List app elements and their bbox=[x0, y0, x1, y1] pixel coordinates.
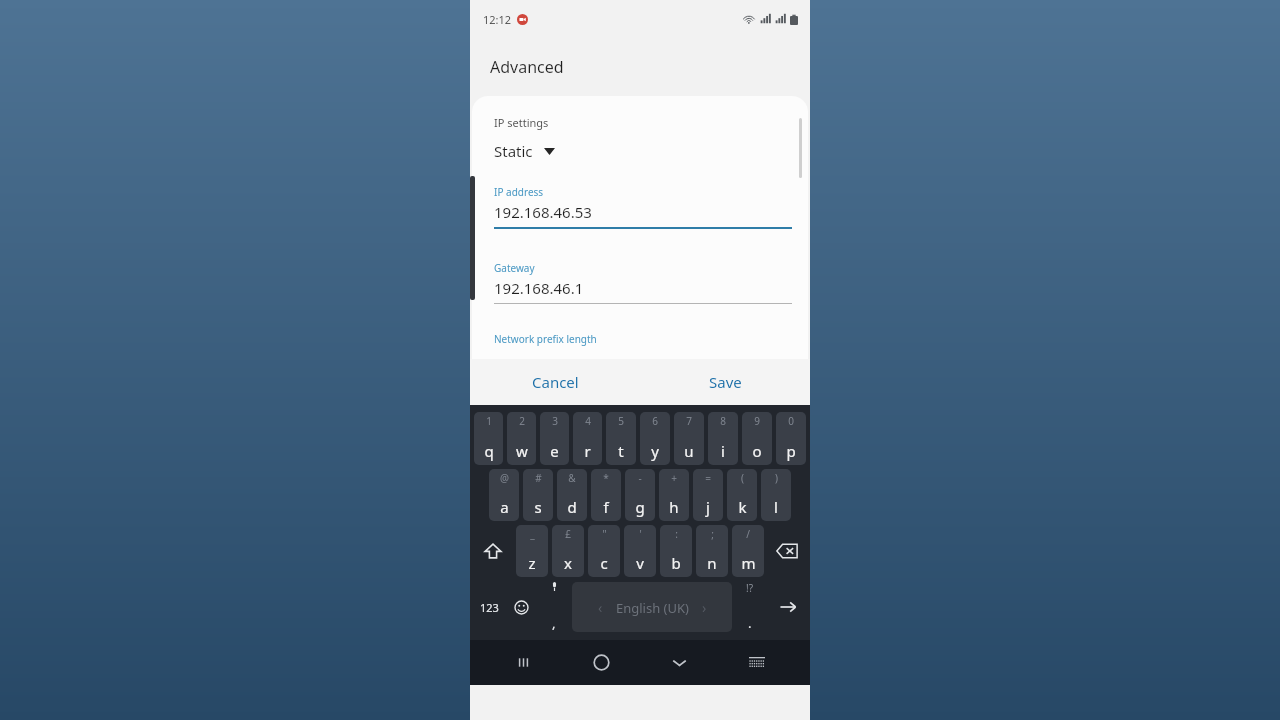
staticText: . bbox=[748, 614, 752, 632]
staticText: IP address bbox=[494, 185, 544, 199]
button[interactable]: Cancel bbox=[470, 359, 640, 405]
staticText: 12:12 bbox=[483, 12, 512, 27]
button[interactable]: / bbox=[732, 525, 764, 577]
staticText: v bbox=[636, 553, 644, 573]
staticText: 2 bbox=[519, 414, 525, 428]
button[interactable]: 0 bbox=[776, 412, 806, 465]
staticText: ‹ bbox=[598, 598, 603, 617]
staticText: @ bbox=[500, 471, 509, 485]
button[interactable]: " bbox=[588, 525, 620, 577]
staticText: , bbox=[552, 614, 556, 632]
staticText: s bbox=[534, 497, 542, 517]
staticText: 1 bbox=[486, 414, 492, 428]
staticText: & bbox=[568, 471, 576, 485]
button[interactable]: Gateway bbox=[494, 261, 792, 304]
staticText: # bbox=[535, 471, 542, 485]
button[interactable]: & bbox=[557, 469, 587, 521]
staticText: 7 bbox=[686, 414, 692, 428]
button[interactable]: _ bbox=[516, 525, 548, 577]
button[interactable]: Static bbox=[494, 141, 555, 161]
staticText: q bbox=[484, 441, 494, 461]
button[interactable]: 2 bbox=[507, 412, 536, 465]
button[interactable]: + bbox=[659, 469, 689, 521]
staticText: ; bbox=[711, 527, 714, 541]
staticText: d bbox=[567, 497, 577, 517]
button[interactable]: Save bbox=[640, 359, 810, 405]
staticText: 6 bbox=[652, 414, 658, 428]
staticText: u bbox=[684, 441, 694, 461]
staticText: › bbox=[702, 598, 707, 617]
button[interactable]: Home bbox=[562, 640, 640, 685]
staticText: : bbox=[675, 527, 678, 541]
button[interactable]: # bbox=[523, 469, 553, 521]
staticText: z bbox=[528, 553, 536, 573]
button[interactable]: Keyboard layout bbox=[718, 640, 796, 685]
staticText: - bbox=[638, 471, 642, 485]
staticText: b bbox=[671, 553, 681, 573]
staticText: 192.168.46.53 bbox=[494, 202, 592, 222]
staticText: _ bbox=[530, 527, 535, 541]
staticText: !? bbox=[746, 581, 754, 595]
staticText: Cancel bbox=[532, 372, 579, 392]
staticText: p bbox=[786, 441, 796, 461]
staticText: x bbox=[564, 553, 572, 573]
staticText: k bbox=[738, 497, 747, 517]
staticText: 0 bbox=[788, 414, 794, 428]
staticText: 4 bbox=[585, 414, 591, 428]
staticText: r bbox=[584, 441, 591, 461]
button[interactable]: 4 bbox=[573, 412, 602, 465]
button[interactable]: £ bbox=[552, 525, 584, 577]
button[interactable]: Backspace bbox=[766, 523, 808, 579]
staticText: 123 bbox=[480, 600, 499, 615]
button[interactable]: 1 bbox=[474, 412, 503, 465]
staticText: English (UK) bbox=[616, 599, 689, 617]
button[interactable]: 123 bbox=[472, 579, 506, 635]
staticText: m bbox=[741, 553, 756, 573]
button[interactable]: 8 bbox=[708, 412, 738, 465]
staticText: f bbox=[603, 497, 609, 517]
button[interactable]: 6 bbox=[640, 412, 670, 465]
button[interactable]: ; bbox=[696, 525, 728, 577]
button[interactable]: - bbox=[625, 469, 655, 521]
staticText: g bbox=[635, 497, 645, 517]
button[interactable]: ) bbox=[761, 469, 791, 521]
button[interactable]: ‹ bbox=[572, 582, 732, 632]
staticText: / bbox=[746, 527, 750, 541]
button[interactable]: Hide keyboard bbox=[640, 640, 718, 685]
button[interactable]: * bbox=[591, 469, 621, 521]
button[interactable]: IP address bbox=[494, 185, 792, 229]
staticText: * bbox=[603, 471, 609, 485]
button[interactable]: Emoji bbox=[506, 579, 536, 635]
staticText: c bbox=[600, 553, 608, 573]
button[interactable]: ' bbox=[624, 525, 656, 577]
button[interactable]: ( bbox=[727, 469, 757, 521]
button[interactable]: : bbox=[660, 525, 692, 577]
staticText: 192.168.46.1 bbox=[494, 278, 584, 298]
button[interactable]: Voice input bbox=[536, 579, 572, 635]
button[interactable]: Recent apps bbox=[484, 640, 562, 685]
staticText: i bbox=[721, 441, 725, 461]
staticText: £ bbox=[565, 527, 571, 541]
staticText: w bbox=[516, 441, 528, 461]
staticText: " bbox=[602, 527, 607, 541]
staticText: h bbox=[669, 497, 679, 517]
button[interactable]: 5 bbox=[606, 412, 636, 465]
staticText: l bbox=[774, 497, 778, 517]
staticText: o bbox=[752, 441, 762, 461]
staticText: + bbox=[671, 471, 677, 485]
staticText: IP settings bbox=[494, 115, 549, 130]
staticText: Gateway bbox=[494, 261, 535, 275]
staticText: ( bbox=[741, 471, 744, 485]
button[interactable]: 9 bbox=[742, 412, 772, 465]
button[interactable]: @ bbox=[489, 469, 519, 521]
button[interactable]: = bbox=[693, 469, 723, 521]
staticText: Network prefix length bbox=[494, 332, 597, 346]
staticText: Save bbox=[709, 372, 742, 392]
button[interactable]: Shift bbox=[472, 523, 514, 579]
staticText: 3 bbox=[552, 414, 558, 428]
button[interactable]: Enter bbox=[768, 579, 808, 635]
staticText: ) bbox=[775, 471, 778, 485]
button[interactable]: Symbols bbox=[732, 579, 768, 635]
button[interactable]: 3 bbox=[540, 412, 569, 465]
button[interactable]: 7 bbox=[674, 412, 704, 465]
